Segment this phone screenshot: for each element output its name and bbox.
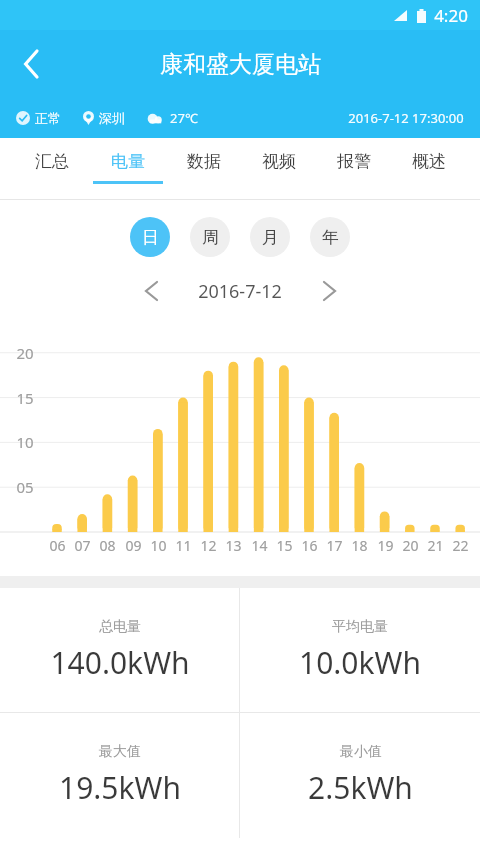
button[interactable]: 周 [190, 217, 230, 257]
button[interactable]: 总电量 [0, 588, 239, 712]
staticText: 年 [322, 227, 339, 248]
staticText: 27℃ [170, 109, 198, 127]
button[interactable]: Back [6, 38, 58, 90]
staticText: 月 [262, 227, 279, 248]
button[interactable]: 最大值 [0, 713, 239, 838]
staticText: 05 [16, 477, 34, 497]
staticText: 22 [452, 536, 469, 555]
staticText: 10 [150, 536, 167, 555]
staticText: 21 [427, 536, 444, 555]
button[interactable]: 平均电量 [240, 588, 480, 712]
staticText: 12 [200, 536, 217, 555]
staticText: 11 [175, 536, 192, 555]
staticText: 15 [276, 536, 293, 555]
staticText: 10 [16, 432, 34, 452]
staticText: 电量 [111, 151, 145, 172]
staticText: 最大值 [99, 743, 141, 761]
button[interactable]: 电量 [90, 138, 166, 196]
staticText: 10.0kWh [299, 642, 421, 683]
button[interactable]: 最小值 [240, 713, 480, 838]
staticText: 报警 [337, 151, 371, 172]
staticText: 视频 [262, 151, 296, 172]
staticText: 周 [202, 227, 219, 248]
staticText: 2016-7-12 17:30:00 [348, 109, 464, 127]
staticText: 14 [251, 536, 268, 555]
staticText: 09 [125, 536, 142, 555]
staticText: 19 [377, 536, 394, 555]
staticText: 正常 [35, 110, 61, 126]
staticText: 08 [99, 536, 116, 555]
button[interactable]: 月 [250, 217, 290, 257]
staticText: 17 [326, 536, 343, 555]
staticText: 16 [301, 536, 318, 555]
staticText: 深圳 [99, 110, 125, 126]
staticText: 13 [225, 536, 242, 555]
button[interactable]: 报警 [316, 138, 391, 196]
staticText: 19.5kWh [59, 767, 181, 808]
staticText: 日 [142, 227, 159, 248]
staticText: 康和盛大厦电站 [160, 50, 321, 79]
button[interactable]: 视频 [241, 138, 316, 196]
button[interactable]: 年 [310, 217, 350, 257]
staticText: 140.0kWh [50, 642, 190, 683]
staticText: 15 [16, 388, 34, 408]
button[interactable]: 汇总 [14, 138, 90, 196]
staticText: 20 [16, 343, 34, 363]
button[interactable]: 日 [130, 217, 170, 257]
staticText: 2.5kWh [308, 767, 413, 808]
staticText: 2016-7-12 [198, 279, 282, 304]
staticText: 总电量 [99, 618, 141, 636]
staticText: 07 [74, 536, 91, 555]
button[interactable]: 数据 [166, 138, 241, 196]
button[interactable]: Next day [312, 274, 346, 308]
staticText: 概述 [412, 151, 446, 172]
staticText: 汇总 [35, 151, 69, 172]
button[interactable]: 概述 [391, 138, 466, 196]
staticText: 最小值 [340, 743, 382, 761]
staticText: 06 [49, 536, 66, 555]
staticText: 18 [351, 536, 368, 555]
staticText: 20 [402, 536, 419, 555]
button[interactable]: Previous day [134, 274, 168, 308]
staticText: 数据 [187, 151, 221, 172]
staticText: 4:20 [434, 4, 468, 27]
staticText: 平均电量 [332, 618, 388, 636]
